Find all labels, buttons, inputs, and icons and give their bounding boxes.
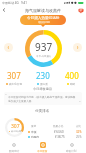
button[interactable]: “ [4,92,82,105]
button[interactable]: 膳食计划 [57,142,86,152]
staticText: 32% [76,130,82,134]
staticText: 今日摄入热量已达标 [27,16,60,21]
staticText: 今日饮食 [37,149,48,152]
button[interactable]: 230 [28,70,57,85]
staticText: 米饭 [31,130,37,134]
staticText: 鸡胸肉 [31,135,40,139]
staticText: 307 [11,123,20,130]
button[interactable]: 数据统计 [0,142,28,152]
button[interactable]: Next day [73,43,82,52]
button[interactable]: 鸡胸肉 [28,135,83,139]
staticText: 膳食计划 [66,149,77,152]
staticText: ” [79,100,81,105]
staticText: 碳水化合物 [11,130,21,133]
staticText: 海气温解读与改善件 [25,8,61,13]
staticText: 食材 [31,124,37,127]
staticText: 热量占比 [53,124,64,127]
staticText: 230 [36,70,50,81]
button[interactable]: Messages [77,7,84,14]
staticText: 分类排名 [35,109,50,114]
button[interactable]: 今日摄入热量已达标 [20,15,66,25]
button[interactable]: 米饭 [28,128,83,135]
button[interactable]: 400 [57,70,86,85]
staticText: 25% [76,135,82,139]
staticText: “ [5,93,7,98]
staticText: 937 [35,40,53,54]
staticText: ¥ 38.75 [55,135,65,139]
staticText: 脂肪 [70,82,76,85]
staticText: 今日饮食结构较为均衡，碳水摄入略高于推荐值，建议晚餐适当减少主食摄入量。 [8,95,78,103]
staticText: 中国移动 4G [2,1,19,5]
staticText: 千卡/今日摄入 [36,54,52,57]
staticText: 蛋白质 [40,82,48,85]
staticText: 占比 [76,124,82,127]
staticText: 今日膳食建议 [33,87,53,91]
staticText: 继续保持哦 [38,21,50,24]
staticText: 307 [7,70,21,81]
staticText: 400 [65,70,79,81]
staticText: 数据统计 [9,149,20,152]
button[interactable]: Previous day [4,43,13,52]
staticText: 碳水化合物 [9,82,22,85]
staticText: ¥ 63.60 [54,130,64,134]
button[interactable]: Back [0,6,8,14]
button[interactable]: 307 [0,70,28,85]
button[interactable]: 今日饮食 [28,142,57,152]
staticText: 9:41 [21,1,27,5]
